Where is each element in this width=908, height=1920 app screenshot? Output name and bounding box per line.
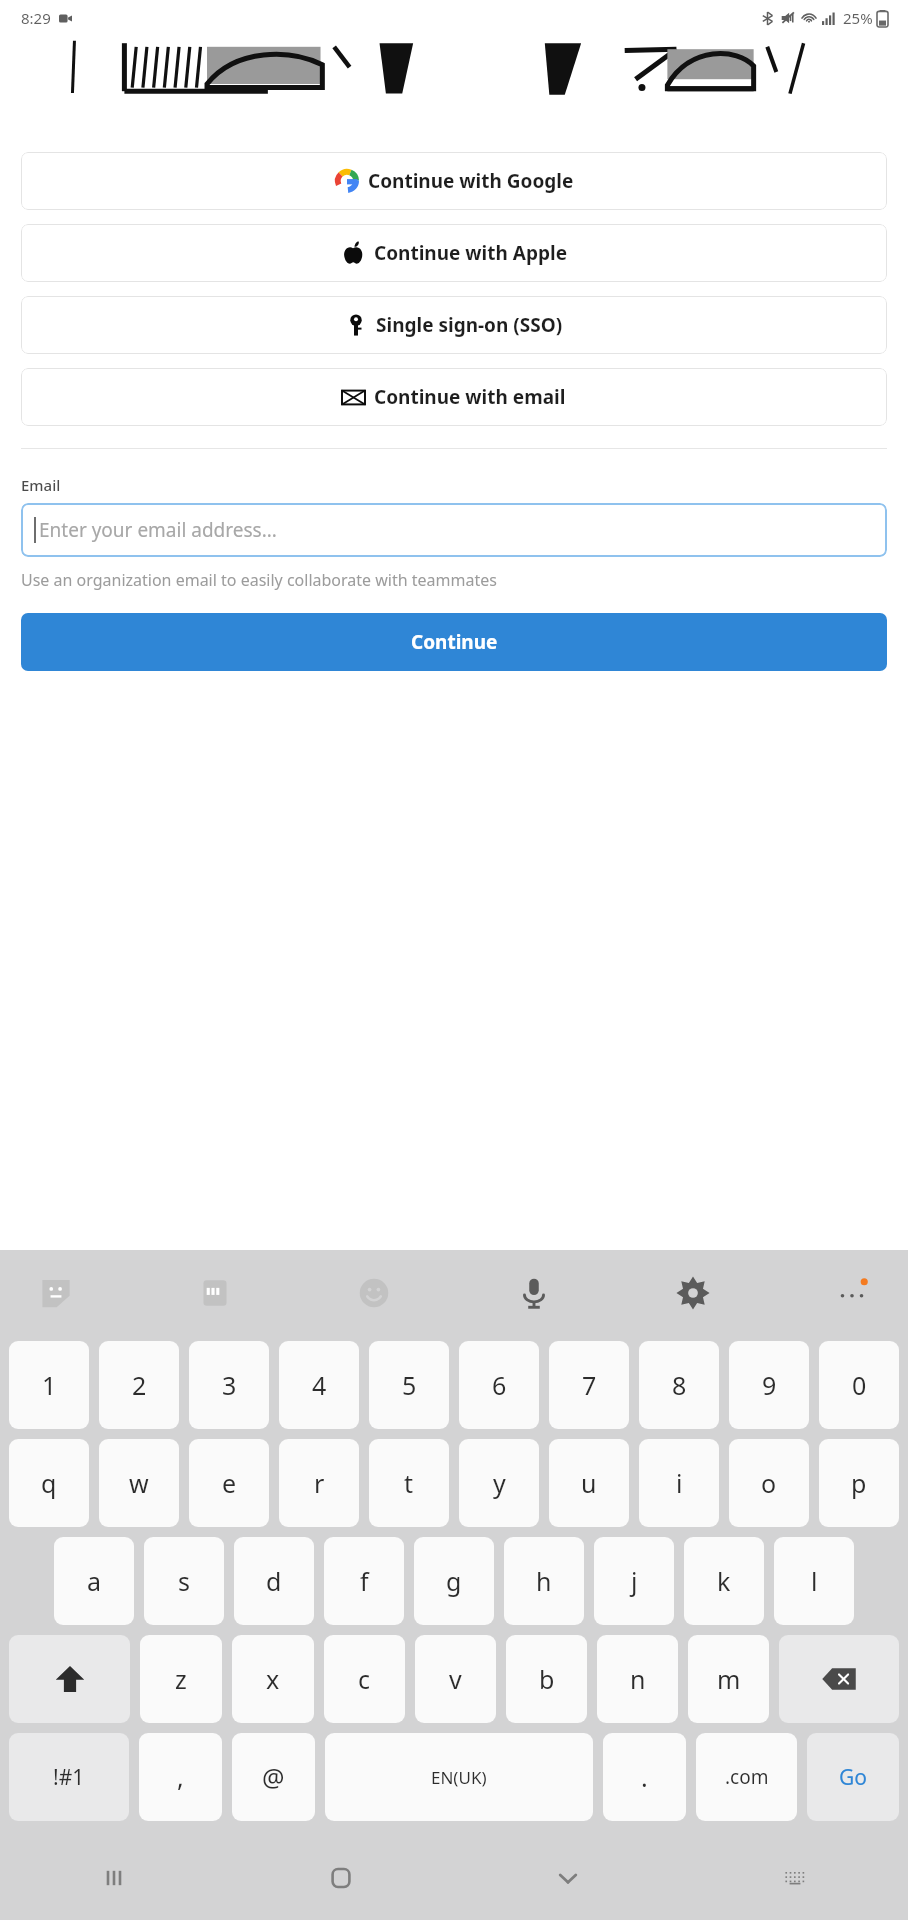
button[interactable]: m	[688, 1635, 769, 1723]
button[interactable]: u	[549, 1439, 629, 1527]
button[interactable]: 5	[369, 1341, 449, 1429]
button[interactable]: v	[415, 1635, 496, 1723]
button[interactable]: q	[9, 1439, 89, 1527]
button[interactable]: Emoji	[348, 1267, 400, 1319]
button[interactable]: p	[819, 1439, 899, 1527]
staticText: !#1	[53, 1763, 85, 1792]
button[interactable]: 1	[9, 1341, 89, 1429]
button[interactable]: .com	[696, 1733, 797, 1821]
button[interactable]: j	[594, 1537, 674, 1625]
button[interactable]: .	[603, 1733, 686, 1821]
staticText: r	[314, 1466, 325, 1500]
staticText: Go	[839, 1763, 867, 1792]
staticText: 3	[222, 1368, 237, 1402]
staticText: b	[539, 1662, 555, 1696]
staticText: k	[717, 1564, 731, 1598]
button[interactable]: Continue with Apple	[21, 224, 887, 282]
staticText: z	[175, 1662, 187, 1696]
staticText: o	[761, 1466, 777, 1500]
staticText: y	[493, 1466, 506, 1500]
button[interactable]: GIF	[189, 1267, 241, 1319]
button[interactable]: y	[459, 1439, 539, 1527]
button[interactable]: Shift	[9, 1635, 130, 1723]
button[interactable]: r	[279, 1439, 359, 1527]
staticText: EN(UK)	[431, 1766, 487, 1789]
staticText: Single sign-on (SSO)	[376, 312, 563, 338]
button[interactable]: More options	[826, 1267, 878, 1319]
staticText: 0	[852, 1368, 867, 1402]
button[interactable]: 9	[729, 1341, 809, 1429]
button[interactable]: 3	[189, 1341, 269, 1429]
button[interactable]: e	[189, 1439, 269, 1527]
button[interactable]: d	[234, 1537, 314, 1625]
button[interactable]: Stickers	[30, 1267, 82, 1319]
staticText: l	[811, 1564, 818, 1598]
button[interactable]: 8	[639, 1341, 719, 1429]
button[interactable]: k	[684, 1537, 764, 1625]
button[interactable]: o	[729, 1439, 809, 1527]
button[interactable]: Continue with Google	[21, 152, 887, 210]
staticText: c	[358, 1662, 371, 1696]
button[interactable]: Continue	[21, 613, 887, 671]
button[interactable]: f	[324, 1537, 404, 1625]
staticText: 9	[762, 1368, 777, 1402]
staticText: j	[631, 1564, 638, 1598]
button[interactable]: 4	[279, 1341, 359, 1429]
staticText: x	[266, 1662, 280, 1696]
button[interactable]: 0	[819, 1341, 899, 1429]
button[interactable]: Voice input	[508, 1267, 560, 1319]
staticText: v	[449, 1662, 462, 1696]
staticText: .com	[725, 1764, 769, 1790]
staticText: d	[266, 1564, 282, 1598]
button[interactable]: Backspace	[779, 1635, 899, 1723]
button[interactable]: EN(UK)	[325, 1733, 593, 1821]
button[interactable]: c	[324, 1635, 405, 1723]
staticText: Enter your email address...	[39, 517, 277, 543]
staticText: 6	[492, 1368, 507, 1402]
staticText: 25%	[843, 8, 873, 28]
button[interactable]: Continue with email	[21, 368, 887, 426]
staticText: p	[851, 1466, 867, 1500]
button[interactable]: s	[144, 1537, 224, 1625]
staticText: Continue with Apple	[374, 240, 567, 266]
staticText: 8:29	[21, 8, 51, 28]
staticText: 4	[312, 1368, 327, 1402]
button[interactable]: @	[232, 1733, 315, 1821]
button[interactable]: x	[232, 1635, 314, 1723]
button[interactable]: h	[504, 1537, 584, 1625]
button[interactable]: g	[414, 1537, 494, 1625]
staticText: 2	[132, 1368, 147, 1402]
button[interactable]: Hide keyboard	[454, 1836, 681, 1920]
button[interactable]: ,	[139, 1733, 222, 1821]
staticText: 8	[672, 1368, 687, 1402]
button[interactable]: Enter your email address...	[21, 503, 887, 557]
button[interactable]: z	[140, 1635, 222, 1723]
staticText: a	[87, 1564, 102, 1598]
staticText: w	[129, 1466, 149, 1500]
button[interactable]: 2	[99, 1341, 179, 1429]
button[interactable]: l	[774, 1537, 854, 1625]
staticText: e	[222, 1466, 237, 1500]
staticText: 1	[42, 1368, 57, 1402]
staticText: u	[581, 1466, 597, 1500]
button[interactable]: Switch keyboard	[681, 1836, 908, 1920]
button[interactable]: Go	[807, 1733, 899, 1821]
button[interactable]: i	[639, 1439, 719, 1527]
staticText: s	[178, 1564, 190, 1598]
button[interactable]: Single sign-on (SSO)	[21, 296, 887, 354]
button[interactable]: 6	[459, 1341, 539, 1429]
staticText: Continue	[411, 629, 498, 655]
button[interactable]: Recents	[0, 1836, 227, 1920]
button[interactable]: t	[369, 1439, 449, 1527]
button[interactable]: w	[99, 1439, 179, 1527]
button[interactable]: b	[506, 1635, 587, 1723]
staticText: .	[641, 1760, 648, 1794]
button[interactable]: !#1	[9, 1733, 129, 1821]
button[interactable]: Keyboard settings	[667, 1267, 719, 1319]
staticText: Continue with Google	[368, 168, 574, 194]
button[interactable]: a	[54, 1537, 134, 1625]
button[interactable]: n	[597, 1635, 678, 1723]
button[interactable]: Home	[227, 1836, 454, 1920]
button[interactable]: 7	[549, 1341, 629, 1429]
staticText: i	[676, 1466, 683, 1500]
